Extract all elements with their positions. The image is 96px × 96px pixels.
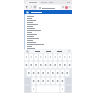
button[interactable]: Tab: [26, 1, 39, 4]
button[interactable]: Navigation menu: [26, 11, 29, 14]
button[interactable]: [27, 21, 72, 23]
button[interactable]: Voice input: [26, 50, 29, 53]
button[interactable]: More suggestions: [68, 50, 70, 52]
button[interactable]: [27, 47, 72, 49]
button[interactable]: [27, 33, 72, 35]
button[interactable]: [27, 23, 72, 25]
button[interactable]: [27, 35, 72, 37]
button[interactable]: [27, 41, 72, 43]
button[interactable]: [27, 37, 72, 39]
button[interactable]: [27, 45, 72, 47]
button[interactable]: [27, 27, 72, 29]
button[interactable]: [27, 19, 72, 21]
button[interactable]: [27, 15, 72, 17]
button[interactable]: Reload: [33, 5, 37, 9]
button[interactable]: Keyboard: [24, 53, 72, 93]
button[interactable]: Navigation menu: [24, 10, 72, 14]
button[interactable]: [27, 29, 72, 31]
button[interactable]: [37, 5, 61, 10]
button[interactable]: Back: [25, 5, 29, 9]
button[interactable]: [27, 17, 72, 19]
button[interactable]: Profile: [65, 6, 68, 9]
button[interactable]: [27, 39, 72, 41]
button[interactable]: Forward: [29, 5, 33, 9]
button[interactable]: [27, 43, 72, 45]
button[interactable]: [27, 31, 72, 33]
button[interactable]: [27, 25, 72, 27]
